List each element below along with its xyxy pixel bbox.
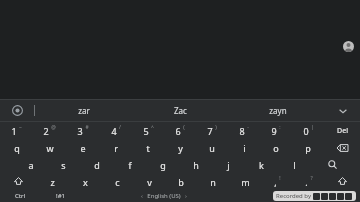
staticText: 3 xyxy=(77,125,83,137)
staticText: d xyxy=(94,159,100,171)
button[interactable]: t xyxy=(132,139,164,156)
staticText: j xyxy=(227,159,230,171)
button[interactable]: Ctrl xyxy=(0,190,40,202)
button[interactable]: u xyxy=(196,139,228,156)
staticText: t xyxy=(146,142,150,154)
staticText: 4 xyxy=(111,125,117,137)
button[interactable]: 9 xyxy=(260,122,292,139)
staticText: 6 xyxy=(175,125,181,137)
staticText: 8 xyxy=(239,125,245,137)
staticText: . xyxy=(305,176,308,188)
button[interactable]: Search xyxy=(314,156,350,173)
staticText: r xyxy=(114,142,118,154)
staticText: a xyxy=(28,159,34,171)
staticText: ^ xyxy=(151,124,154,131)
button[interactable]: d xyxy=(80,156,113,173)
button[interactable]: o xyxy=(260,139,292,156)
staticText: b xyxy=(178,176,184,188)
button[interactable]: e xyxy=(66,139,99,156)
button[interactable]: r xyxy=(99,139,132,156)
staticText: ( xyxy=(183,124,185,131)
button[interactable]: 3 xyxy=(66,122,99,139)
button[interactable]: n xyxy=(197,173,229,190)
button[interactable]: . xyxy=(293,173,325,190)
staticText: zar xyxy=(78,105,90,116)
staticText: x xyxy=(83,176,88,188)
staticText: l xyxy=(293,159,296,171)
button[interactable]: zar xyxy=(35,100,132,121)
staticText: e xyxy=(80,142,86,154)
staticText: h xyxy=(193,159,199,171)
button[interactable]: p xyxy=(292,139,324,156)
button[interactable]: Expand suggestions xyxy=(326,100,360,121)
button[interactable]: Del xyxy=(324,122,360,139)
button[interactable]: , xyxy=(261,173,293,190)
button[interactable]: l xyxy=(278,156,311,173)
staticText: k xyxy=(259,159,264,171)
button[interactable]: zayn xyxy=(229,100,326,121)
button[interactable]: g xyxy=(146,156,179,173)
staticText: 5 xyxy=(143,125,149,137)
staticText: Recorded by xyxy=(276,192,311,200)
staticText: , xyxy=(274,176,277,188)
staticText: Ctrl xyxy=(15,192,25,200)
staticText: | xyxy=(311,124,314,131)
staticText: : xyxy=(279,124,281,131)
button[interactable]: 4 xyxy=(99,122,132,139)
button[interactable]: v xyxy=(133,173,165,190)
staticText: 9 xyxy=(271,125,277,137)
staticText: 0 xyxy=(303,125,309,137)
button[interactable]: b xyxy=(165,173,197,190)
button[interactable]: 5 xyxy=(132,122,164,139)
staticText: v xyxy=(147,176,152,188)
button[interactable]: z xyxy=(36,173,69,190)
button[interactable]: !#1 xyxy=(40,190,80,202)
staticText: - xyxy=(247,124,249,131)
staticText: !#1 xyxy=(56,192,65,200)
button[interactable]: 8 xyxy=(228,122,260,139)
staticText: q xyxy=(14,142,20,154)
button[interactable]: w xyxy=(33,139,66,156)
staticText: o xyxy=(273,142,279,154)
staticText: English (US) xyxy=(147,192,181,200)
button[interactable]: f xyxy=(113,156,146,173)
staticText: m xyxy=(241,176,250,188)
button[interactable]: Zac xyxy=(132,100,229,121)
staticText: 1 xyxy=(11,125,17,137)
button[interactable]: 1 xyxy=(0,122,33,139)
button[interactable]: Google assistant xyxy=(0,100,34,121)
staticText: ) xyxy=(215,124,217,131)
button[interactable]: Shift xyxy=(325,173,360,190)
button[interactable]: j xyxy=(212,156,245,173)
staticText: s xyxy=(61,159,66,171)
staticText: ‹ xyxy=(141,192,143,200)
staticText: i xyxy=(243,142,246,154)
staticText: n xyxy=(210,176,216,188)
staticText: ! xyxy=(279,175,281,182)
staticText: c xyxy=(115,176,120,188)
staticText: zayn xyxy=(269,105,287,116)
button[interactable]: Space xyxy=(80,190,247,202)
button[interactable]: x xyxy=(69,173,101,190)
button[interactable]: 6 xyxy=(164,122,196,139)
button[interactable]: s xyxy=(47,156,80,173)
button[interactable]: m xyxy=(229,173,261,190)
button[interactable] xyxy=(247,190,360,202)
button[interactable]: 2 xyxy=(33,122,66,139)
button[interactable]: h xyxy=(179,156,212,173)
button[interactable]: 7 xyxy=(196,122,228,139)
staticText: u xyxy=(209,142,215,154)
staticText: 7 xyxy=(207,125,213,137)
button[interactable]: Backspace xyxy=(324,139,360,156)
staticText: ~ xyxy=(19,124,22,131)
button[interactable]: Account avatar xyxy=(343,41,354,52)
button[interactable]: 0 xyxy=(292,122,324,139)
button[interactable]: q xyxy=(0,139,33,156)
button[interactable]: y xyxy=(164,139,196,156)
button[interactable]: c xyxy=(101,173,133,190)
staticText: g xyxy=(160,159,166,171)
button[interactable]: i xyxy=(228,139,260,156)
button[interactable]: a xyxy=(15,156,47,173)
button[interactable]: k xyxy=(245,156,278,173)
button[interactable]: Shift xyxy=(0,173,36,190)
